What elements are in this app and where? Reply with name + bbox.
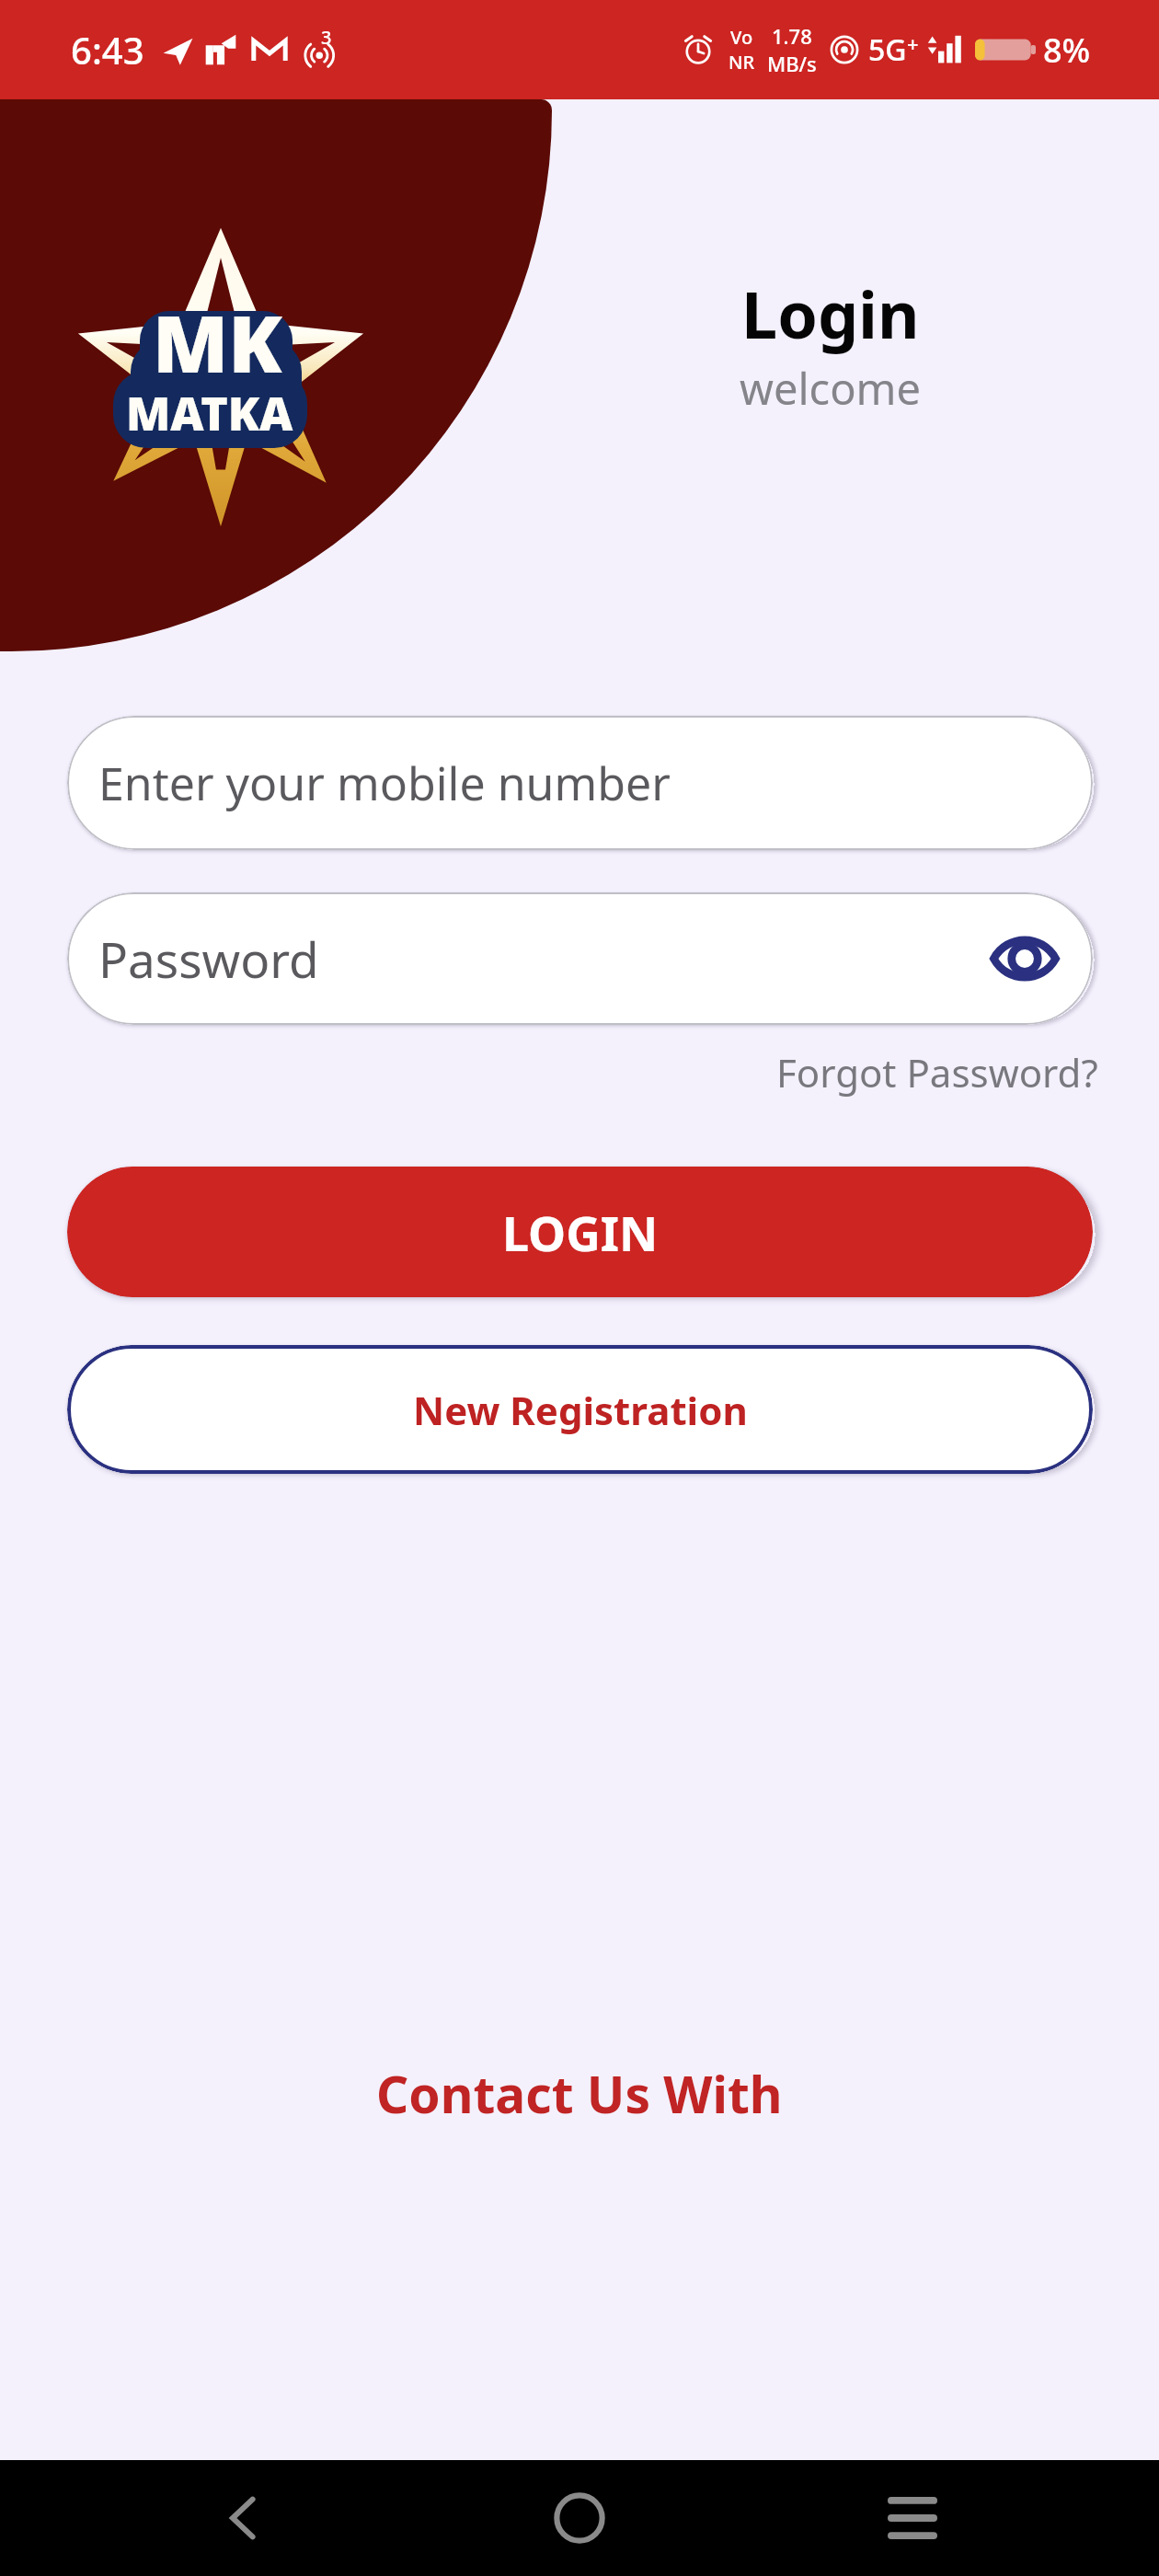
button[interactable]: Password (67, 892, 1093, 1025)
staticText: 3 (321, 25, 332, 50)
button[interactable]: Show password (988, 922, 1061, 995)
staticText: Enter your mobile number (98, 752, 671, 814)
staticText: MATKA (126, 382, 293, 444)
staticText: + (907, 29, 919, 57)
staticText: 8% (1043, 28, 1091, 73)
staticText: welcome (740, 359, 922, 418)
staticText: Login (741, 270, 920, 357)
staticText: Vo (730, 25, 753, 50)
button[interactable]: Recent apps (857, 2463, 968, 2573)
staticText: LOGIN (502, 1200, 659, 1265)
button[interactable]: New Registration (67, 1345, 1093, 1474)
staticText: MB/s (767, 50, 817, 77)
button[interactable]: LOGIN (67, 1167, 1093, 1297)
staticText: Contact Us With (376, 2059, 783, 2128)
staticText: NR (729, 50, 755, 75)
staticText: Forgot Password? (776, 1046, 1098, 1098)
staticText: Password (98, 926, 319, 992)
button[interactable]: Home (524, 2463, 635, 2573)
button[interactable]: Forgot Password? (760, 1037, 1115, 1107)
button[interactable]: Enter your mobile number (67, 716, 1093, 850)
staticText: 6:43 (71, 25, 144, 75)
staticText: 5G (868, 29, 907, 70)
staticText: MK (153, 289, 282, 396)
button[interactable]: Back (189, 2463, 299, 2573)
staticText: New Registration (413, 1384, 748, 1436)
staticText: 1.78 (772, 22, 812, 50)
